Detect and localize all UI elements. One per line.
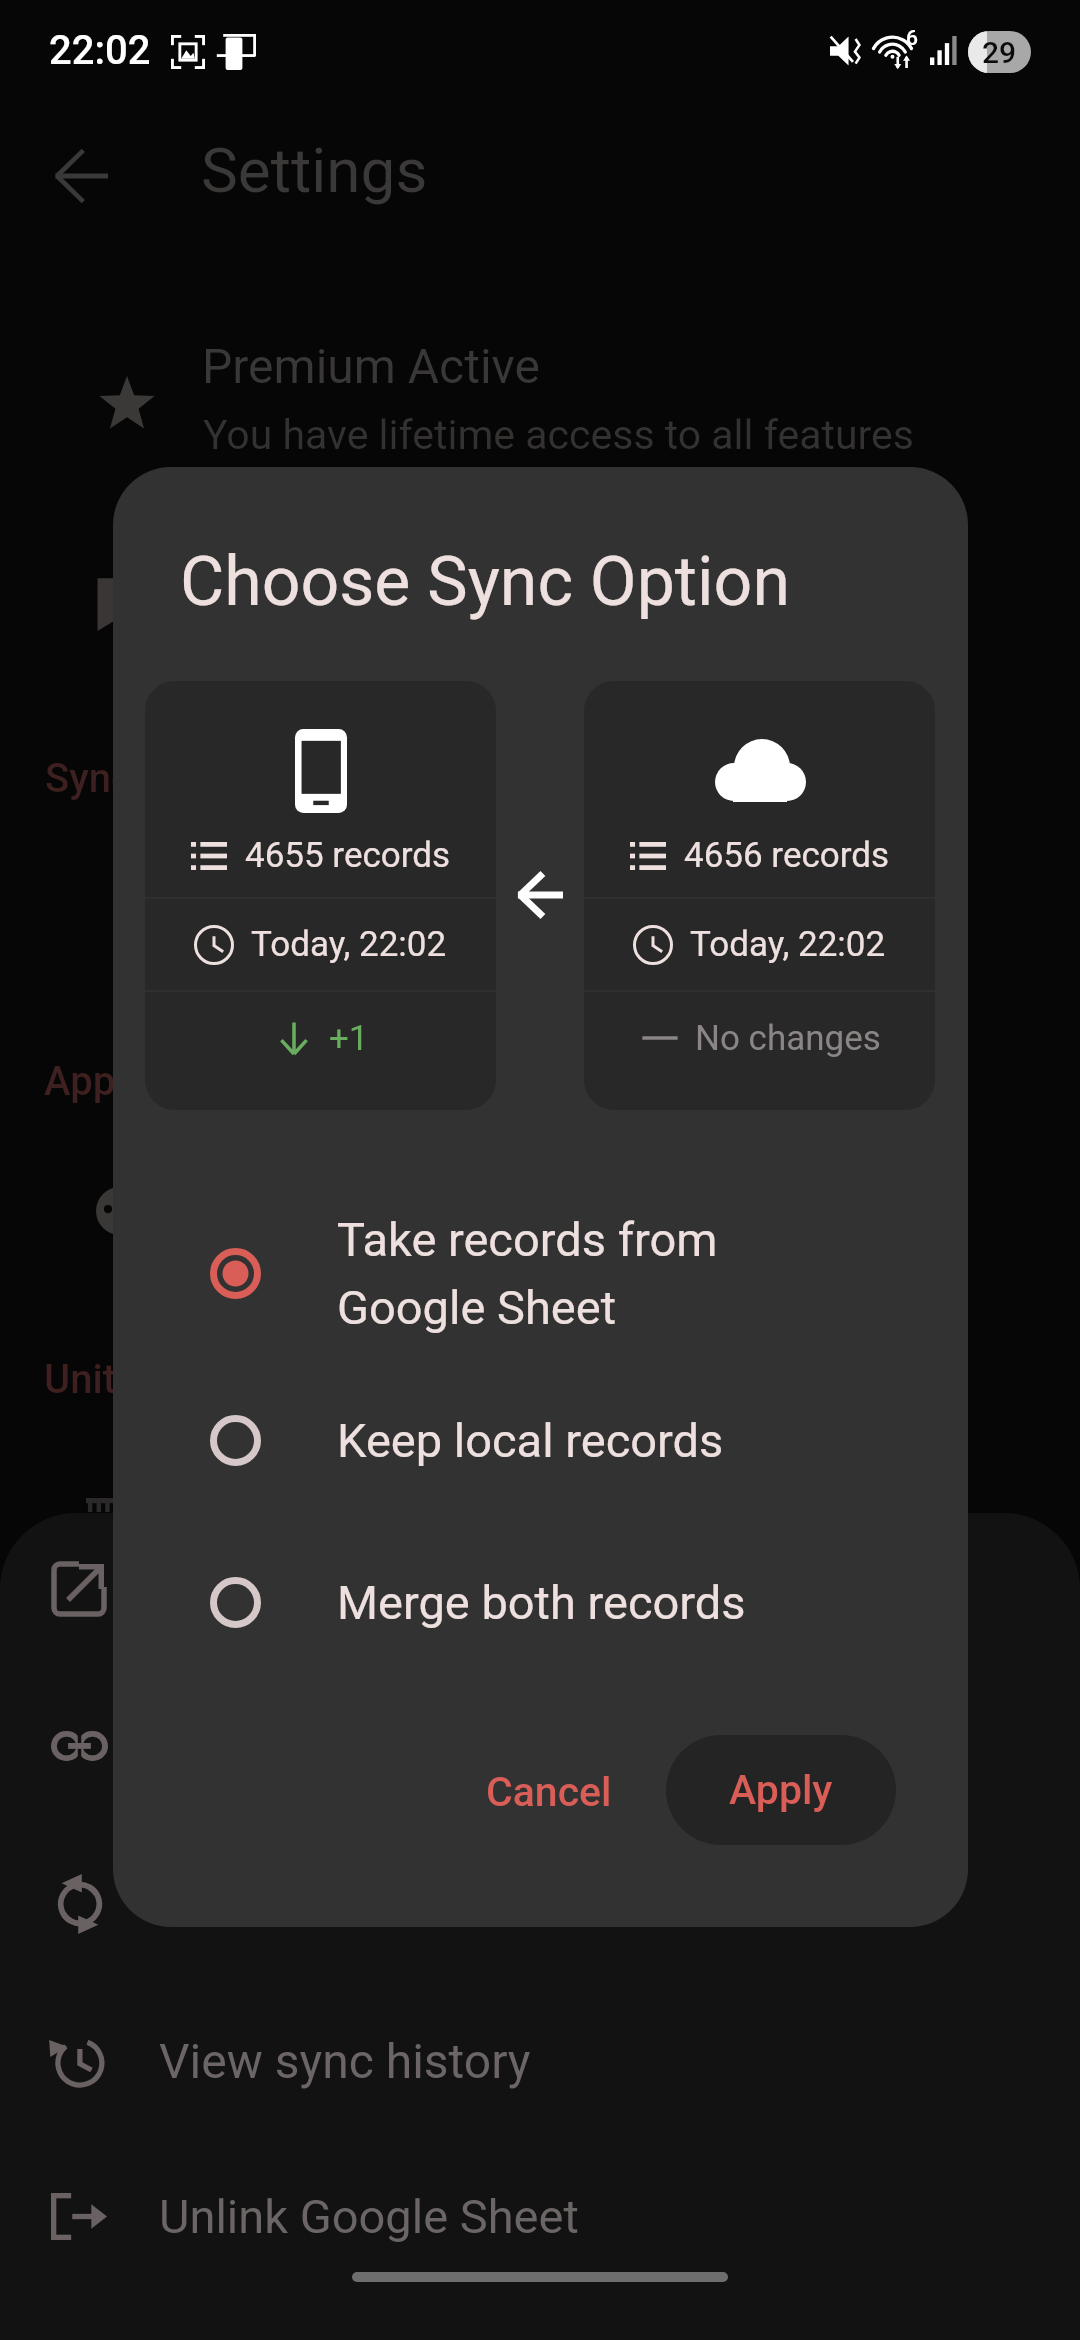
staticText: Cancel [486, 1768, 612, 1816]
button[interactable]: Unlink Google Sheet [0, 2141, 1080, 2291]
button[interactable]: View sync history [0, 1986, 1080, 2136]
staticText: Today, 22:02 [251, 924, 447, 965]
button[interactable]: Apply [666, 1735, 896, 1845]
staticText: Merge both records [337, 1575, 746, 1630]
button[interactable]: Back [50, 146, 110, 206]
staticText: +1 [329, 1018, 369, 1059]
button[interactable]: Cancel [468, 1709, 630, 1874]
staticText: Take records from Google Sheet [337, 1212, 718, 1335]
button[interactable]: Take records from Google Sheet [113, 1183, 968, 1363]
staticText: Apply [729, 1766, 833, 1814]
staticText: 4655 records [245, 835, 451, 876]
staticText: Unlink Google Sheet [159, 2189, 579, 2244]
staticText: View sync history [159, 2033, 531, 2089]
staticText: Units [44, 1356, 137, 1403]
staticText: Choose Sync Option [180, 542, 790, 622]
staticText: Sync [45, 755, 132, 802]
staticText: 6 [906, 26, 918, 51]
button[interactable]: Open in new [54, 1564, 104, 1614]
staticText: Settings [201, 134, 428, 207]
button[interactable]: Sync now [57, 1874, 103, 1934]
button[interactable]: Linked sheet [51, 1731, 108, 1761]
staticText: Keep local records [337, 1413, 724, 1468]
staticText: You have lifetime access to all features [203, 411, 914, 459]
staticText: Appearance [44, 1058, 258, 1105]
staticText: 4656 records [684, 835, 890, 876]
staticText: 29 [982, 35, 1017, 70]
button[interactable]: Keep local records [113, 1363, 968, 1518]
staticText: Today, 22:02 [690, 924, 886, 965]
staticText: Premium Active [202, 338, 540, 394]
button[interactable]: Merge both records [113, 1523, 968, 1681]
staticText: 22:02 [49, 27, 151, 74]
staticText: No changes [695, 1018, 881, 1059]
